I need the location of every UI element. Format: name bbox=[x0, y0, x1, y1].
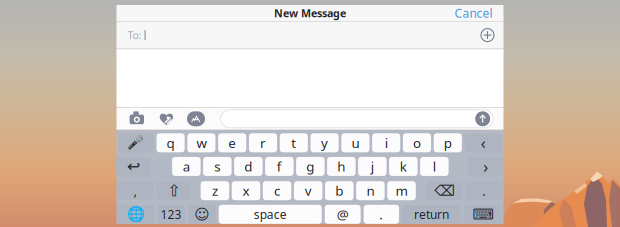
staticText: . bbox=[379, 205, 383, 223]
staticText: g bbox=[306, 158, 314, 175]
button[interactable]: Camera bbox=[122, 108, 152, 130]
button[interactable]: s bbox=[203, 157, 232, 176]
button[interactable]: y bbox=[311, 133, 339, 152]
staticText: ☺ bbox=[194, 206, 209, 223]
button[interactable]: p bbox=[434, 133, 462, 152]
staticText: u bbox=[351, 134, 359, 152]
button[interactable]: . bbox=[364, 205, 399, 224]
button[interactable]: 🎤 bbox=[118, 133, 154, 152]
button[interactable]: 🌐 bbox=[118, 205, 154, 224]
staticText: ⌨ bbox=[473, 206, 494, 223]
button[interactable]: ⇧ bbox=[157, 181, 191, 200]
staticText: a bbox=[183, 158, 190, 175]
button[interactable]: ☺ bbox=[188, 205, 216, 224]
button[interactable]: e bbox=[218, 133, 246, 152]
button[interactable]: f bbox=[265, 157, 294, 176]
button[interactable]: w bbox=[187, 133, 215, 152]
staticText: space bbox=[254, 206, 287, 222]
button[interactable]: @ bbox=[325, 205, 361, 224]
staticText: New Message bbox=[274, 6, 346, 20]
button[interactable]: a bbox=[172, 157, 201, 176]
button[interactable]: l bbox=[420, 157, 449, 176]
button[interactable]: 123 bbox=[157, 205, 185, 224]
staticText: c bbox=[274, 182, 280, 199]
button[interactable]: Add contact bbox=[480, 28, 503, 42]
staticText: return bbox=[414, 206, 449, 222]
button[interactable]: › bbox=[467, 157, 504, 176]
button[interactable]: ⌨ bbox=[464, 205, 502, 224]
staticText: m bbox=[395, 182, 407, 199]
button[interactable]: Digital Touch bbox=[152, 108, 181, 130]
button[interactable]: space bbox=[219, 205, 322, 224]
button[interactable]: . bbox=[466, 181, 503, 200]
staticText: i bbox=[385, 134, 388, 152]
staticText: w bbox=[196, 134, 206, 152]
staticText: y bbox=[321, 134, 328, 152]
staticText: ⇧ bbox=[167, 182, 180, 200]
button[interactable]: d bbox=[234, 157, 263, 176]
button[interactable]: i bbox=[372, 133, 400, 152]
button[interactable]: u bbox=[341, 133, 369, 152]
staticText: @ bbox=[337, 205, 349, 223]
button[interactable]: j bbox=[358, 157, 387, 176]
button[interactable]: Cancel bbox=[454, 5, 503, 21]
button[interactable]: k bbox=[389, 157, 418, 176]
staticText: h bbox=[337, 158, 345, 175]
button[interactable] bbox=[221, 110, 493, 128]
button[interactable]: o bbox=[403, 133, 431, 152]
staticText: b bbox=[335, 182, 343, 199]
staticText: 🎤 bbox=[127, 135, 144, 150]
staticText: . bbox=[482, 182, 486, 199]
staticText: x bbox=[242, 182, 249, 199]
button[interactable]: h bbox=[327, 157, 356, 176]
staticText: Cancel bbox=[454, 5, 492, 21]
staticText: q bbox=[167, 134, 175, 152]
staticText: e bbox=[228, 134, 236, 152]
staticText: z bbox=[212, 182, 218, 199]
button[interactable]: ↩ bbox=[116, 157, 151, 176]
button[interactable]: r bbox=[249, 133, 277, 152]
staticText: r bbox=[260, 134, 266, 152]
button[interactable]: q bbox=[156, 133, 185, 152]
staticText: › bbox=[483, 156, 488, 177]
staticText: j bbox=[371, 158, 374, 175]
button[interactable]: x bbox=[232, 181, 260, 200]
staticText: d bbox=[244, 158, 252, 175]
button[interactable]: g bbox=[296, 157, 325, 176]
staticText: s bbox=[214, 158, 220, 175]
button[interactable]: m bbox=[387, 181, 416, 200]
button[interactable]: ⌫ bbox=[426, 181, 463, 200]
staticText: 🌐 bbox=[127, 206, 145, 223]
button[interactable]: App Store bbox=[181, 108, 211, 130]
staticText: ⌫ bbox=[434, 182, 455, 199]
button[interactable]: b bbox=[325, 181, 354, 200]
button[interactable]: ‹ bbox=[465, 133, 502, 152]
button[interactable]: , bbox=[117, 181, 154, 200]
button[interactable]: t bbox=[280, 133, 308, 152]
button[interactable]: n bbox=[356, 181, 385, 200]
staticText: k bbox=[400, 158, 407, 175]
staticText: f bbox=[277, 158, 282, 175]
button[interactable]: return bbox=[402, 205, 461, 224]
staticText: p bbox=[444, 134, 452, 152]
staticText: v bbox=[305, 182, 312, 199]
staticText: t bbox=[291, 134, 296, 152]
button[interactable]: z bbox=[201, 181, 229, 200]
staticText: l bbox=[433, 158, 436, 175]
staticText: n bbox=[366, 182, 374, 199]
staticText: 123 bbox=[161, 206, 182, 222]
staticText: ‹ bbox=[481, 132, 486, 153]
button[interactable]: v bbox=[294, 181, 322, 200]
staticText: To: bbox=[127, 28, 141, 42]
staticText: , bbox=[133, 182, 137, 199]
button[interactable]: c bbox=[263, 181, 291, 200]
staticText: ↩ bbox=[127, 157, 140, 175]
staticText: o bbox=[413, 134, 421, 152]
